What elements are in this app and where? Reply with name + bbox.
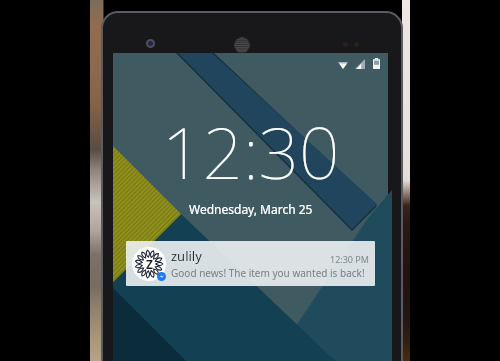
staticText: Wednesday, March 25 <box>189 201 313 217</box>
staticText: Good news! The item you wanted is back! <box>171 266 365 280</box>
staticText: 12:30 PM <box>330 253 369 265</box>
button[interactable]: Z <box>126 241 375 286</box>
staticText: Z <box>146 256 153 272</box>
staticText: 12:30 <box>162 103 340 200</box>
staticText: zulily <box>171 247 202 265</box>
